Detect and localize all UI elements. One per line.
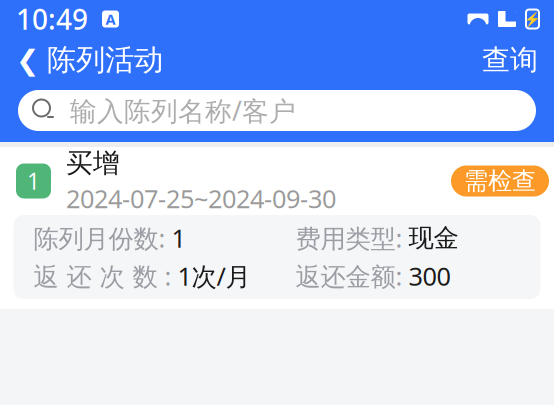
staticText: 返 还 次 数 : [33, 259, 171, 293]
button[interactable]: 输入陈列名称/客户 [18, 90, 536, 131]
button[interactable]: 查询 [468, 38, 552, 82]
staticText: 输入陈列名称/客户 [70, 93, 296, 128]
staticText: A [105, 9, 115, 29]
staticText: 陈列月份数: [33, 221, 165, 255]
staticText: ⚡ [524, 11, 541, 27]
staticText: 2024-07-25~2024-09-30 [66, 182, 336, 215]
staticText: 陈列活动 [47, 42, 163, 78]
staticText: 费用类型: [295, 221, 402, 255]
button[interactable]: ❮ [0, 38, 173, 82]
staticText: 需检查 [464, 166, 536, 196]
staticText: ❮ [16, 44, 39, 76]
staticText: 1 [27, 166, 40, 196]
staticText: 300 [408, 259, 450, 293]
staticText: 1次/月 [177, 259, 250, 293]
staticText: 返还金额: [295, 259, 402, 293]
staticText: 1 [171, 221, 185, 255]
staticText: 10:49 [16, 0, 88, 38]
staticText: 查询 [482, 43, 538, 77]
staticText: 现金 [408, 222, 458, 253]
button[interactable]: 1 [0, 147, 554, 309]
staticText: 买增 [66, 147, 120, 180]
